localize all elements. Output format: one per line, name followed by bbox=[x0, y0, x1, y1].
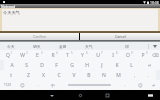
staticText: 18:08 bbox=[150, 0, 159, 4]
button[interactable]: R bbox=[45, 50, 60, 60]
staticText: ?123 bbox=[4, 83, 11, 87]
button[interactable]: ， bbox=[126, 70, 141, 80]
staticText: 5 bbox=[71, 51, 73, 55]
button[interactable]: V bbox=[66, 70, 81, 80]
staticText: X bbox=[42, 72, 45, 79]
button[interactable]: D bbox=[34, 60, 49, 70]
button[interactable]: 明天 bbox=[26, 42, 48, 50]
button[interactable]: 今天天气 bbox=[2, 9, 158, 31]
button[interactable]: Y bbox=[75, 50, 90, 60]
button[interactable]: ⌫ bbox=[150, 50, 160, 60]
button[interactable]: H bbox=[79, 60, 94, 70]
staticText: 1 bbox=[11, 51, 13, 55]
staticText: F bbox=[55, 62, 58, 69]
staticText: ☺ bbox=[138, 83, 143, 88]
button[interactable]: F bbox=[49, 60, 64, 70]
staticText: 天气 bbox=[85, 44, 93, 49]
staticText: 中 bbox=[51, 83, 55, 88]
staticText: ， bbox=[36, 83, 40, 88]
button[interactable]: L bbox=[124, 60, 139, 70]
button[interactable]: X bbox=[36, 70, 51, 80]
button[interactable]: 金田 bbox=[52, 42, 74, 50]
staticText: R bbox=[51, 52, 55, 59]
button[interactable]: A bbox=[4, 60, 19, 70]
button[interactable]: C bbox=[51, 70, 66, 80]
button[interactable]: 中 bbox=[45, 80, 60, 90]
staticText: M bbox=[116, 72, 121, 79]
staticText: 明天 bbox=[33, 44, 41, 49]
button[interactable]: S bbox=[19, 60, 34, 70]
button[interactable]: ?123 bbox=[0, 80, 15, 90]
staticText: 6 bbox=[86, 51, 88, 55]
staticText: N bbox=[102, 72, 106, 79]
button[interactable]: Hide keyboard bbox=[46, 91, 58, 100]
staticText: I bbox=[112, 52, 114, 59]
button[interactable]: G bbox=[64, 60, 79, 70]
button[interactable]: ⇧ bbox=[0, 70, 21, 80]
staticText: O bbox=[126, 52, 130, 59]
staticText: Confirm bbox=[33, 34, 47, 39]
button[interactable]: 天气 bbox=[78, 42, 100, 50]
button[interactable]: ☺ bbox=[15, 80, 30, 90]
staticText: ☺ bbox=[20, 83, 25, 88]
button[interactable]: T bbox=[60, 50, 75, 60]
button[interactable]: 今天 bbox=[0, 42, 22, 50]
button[interactable]: ☺ bbox=[133, 80, 148, 90]
button[interactable]: P bbox=[135, 50, 150, 60]
staticText: D bbox=[40, 62, 44, 69]
button[interactable]: Z bbox=[21, 70, 36, 80]
staticText: 2 bbox=[26, 51, 28, 55]
button[interactable]: Recent apps bbox=[101, 91, 113, 100]
staticText: 甜 bbox=[125, 44, 129, 49]
button[interactable]: Q bbox=[0, 50, 15, 60]
button[interactable]: Home bbox=[74, 91, 86, 100]
staticText: B bbox=[87, 72, 91, 79]
staticText: E bbox=[36, 52, 39, 59]
staticText: 金田 bbox=[59, 44, 67, 49]
button[interactable]: J bbox=[94, 60, 109, 70]
staticText: 0 bbox=[146, 51, 148, 55]
staticText: 8 bbox=[116, 51, 118, 55]
button[interactable]: B bbox=[81, 70, 96, 80]
staticText: 4 bbox=[56, 51, 58, 55]
button[interactable]: K bbox=[109, 60, 124, 70]
staticText: A bbox=[10, 62, 14, 69]
button[interactable]: Change keyboard bbox=[145, 91, 155, 100]
staticText: 今天 bbox=[7, 44, 15, 49]
button[interactable] bbox=[60, 80, 118, 90]
staticText: P bbox=[141, 52, 145, 59]
staticText: ⌫ bbox=[152, 53, 159, 58]
staticText: J bbox=[101, 62, 103, 69]
button[interactable]: O bbox=[120, 50, 135, 60]
button[interactable]: 甜 bbox=[116, 42, 138, 50]
button[interactable]: U bbox=[90, 50, 105, 60]
button[interactable]: Notepad bbox=[0, 4, 160, 8]
button[interactable]: E bbox=[30, 50, 45, 60]
staticText: 今天天气 bbox=[3, 10, 20, 15]
staticText: 。 bbox=[124, 83, 128, 88]
staticText: Notepad bbox=[1, 4, 16, 8]
button[interactable]: N bbox=[96, 70, 111, 80]
staticText: 7 bbox=[101, 51, 103, 55]
staticText: 9 bbox=[131, 51, 133, 55]
button[interactable]: W bbox=[15, 50, 30, 60]
button[interactable]: More candidates bbox=[149, 42, 160, 50]
button[interactable]: Confirm bbox=[0, 33, 79, 40]
button[interactable]: Cancel bbox=[80, 33, 160, 40]
staticText: T bbox=[66, 52, 69, 59]
staticText: ， bbox=[132, 73, 136, 78]
button[interactable]: M bbox=[111, 70, 126, 80]
button[interactable]: I bbox=[105, 50, 120, 60]
staticText: Cancel bbox=[115, 34, 126, 39]
button[interactable]: ↵ bbox=[148, 80, 160, 90]
button[interactable]: ↵ bbox=[139, 60, 160, 70]
staticText: G bbox=[70, 62, 74, 69]
staticText: Q bbox=[6, 52, 10, 59]
staticText: ↵ bbox=[148, 63, 152, 68]
staticText: Z bbox=[27, 72, 30, 79]
staticText: 3 bbox=[41, 51, 43, 55]
staticText: ↵ bbox=[152, 83, 156, 88]
